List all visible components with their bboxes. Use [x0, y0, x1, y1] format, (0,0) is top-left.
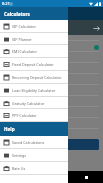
staticText: Calculators [4, 11, 30, 17]
button[interactable]: Recurring Deposit Calculator [0, 71, 68, 84]
button[interactable]: Loan Eligibility Calculator [0, 84, 68, 97]
staticText: Fixed Deposit Calculator [12, 62, 54, 67]
button[interactable]: EMI Calculator [0, 45, 68, 58]
staticText: SIP Calculator [12, 24, 36, 29]
button[interactable]: Rate Us [0, 162, 68, 175]
button[interactable]: SIP Calculator [0, 20, 68, 33]
button[interactable]: Forward [92, 24, 100, 32]
staticText: Rate Us [12, 166, 26, 171]
staticText: Loan Eligibility Calculator [12, 88, 56, 93]
staticText: PPF Calculator [12, 113, 37, 118]
staticText: Help [4, 126, 15, 132]
button[interactable]: Gratuity Calculator [0, 97, 68, 109]
button[interactable]: Home [35, 171, 69, 183]
staticText: Gratuity Calculator [12, 101, 45, 106]
button[interactable]: Saved Calculations [0, 136, 68, 149]
button[interactable]: Settings [0, 149, 68, 162]
staticText: Saved Calculations [12, 140, 45, 145]
staticText: Recurring Deposit Calculator [12, 75, 62, 80]
staticText: Settings [12, 153, 27, 158]
button[interactable]: Recents [69, 171, 103, 183]
staticText: EMI Calculator [12, 49, 38, 54]
button[interactable]: PPF Calculator [0, 109, 68, 122]
button[interactable]: SIP Planner [0, 33, 68, 45]
staticText: 8:25 [2, 1, 10, 6]
button[interactable]: Fixed Deposit Calculator [0, 58, 68, 71]
button[interactable]: Back [0, 171, 35, 183]
staticText: SIP Planner [12, 37, 32, 42]
